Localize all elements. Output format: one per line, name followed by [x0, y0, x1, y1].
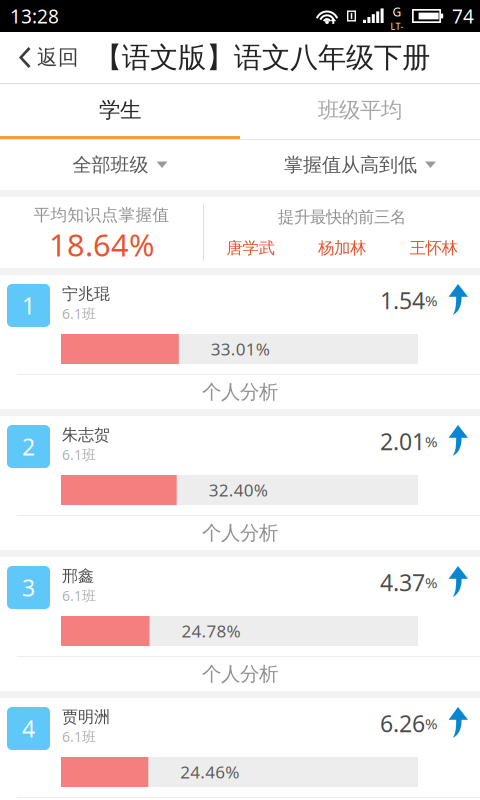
- staticText: 【语文版】语文八年级下册: [94, 40, 430, 75]
- staticText: 13:28: [10, 3, 59, 29]
- staticText: 邢鑫: [62, 566, 94, 586]
- staticText: 平均知识点掌握值: [33, 205, 169, 225]
- button[interactable]: 1: [0, 275, 480, 409]
- staticText: 74: [452, 3, 474, 29]
- staticText: 18.64%: [49, 224, 154, 265]
- staticText: 全部班级: [72, 153, 148, 177]
- staticText: %: [425, 713, 438, 733]
- staticText: 个人分析: [202, 662, 278, 686]
- staticText: LTE: [390, 20, 403, 45]
- staticText: 4G: [392, 0, 401, 20]
- staticText: 4: [22, 713, 35, 744]
- staticText: 1: [22, 290, 35, 321]
- staticText: 朱志贺: [62, 425, 110, 445]
- staticText: 6.1班: [62, 727, 96, 746]
- staticText: 个人分析: [202, 380, 278, 404]
- button[interactable]: 2: [0, 416, 480, 550]
- staticText: 32.40%: [209, 478, 268, 502]
- staticText: %: [425, 572, 438, 592]
- button[interactable]: 3: [0, 557, 480, 691]
- staticText: 贾明洲: [62, 707, 110, 727]
- button[interactable]: 班级平均: [240, 84, 480, 139]
- staticText: 33.01%: [211, 337, 270, 361]
- button[interactable]: 学生: [0, 84, 240, 139]
- staticText: 提升最快的前三名: [278, 207, 406, 227]
- staticText: 24.78%: [181, 619, 240, 643]
- staticText: 1.54: [380, 285, 425, 316]
- button[interactable]: 全部班级: [0, 140, 240, 190]
- button[interactable]: 4: [0, 698, 480, 800]
- button[interactable]: 返回: [0, 32, 91, 83]
- staticText: 个人分析: [202, 521, 278, 545]
- staticText: 2: [22, 431, 35, 462]
- staticText: 返回: [37, 45, 79, 70]
- staticText: 3: [22, 572, 35, 603]
- staticText: 6.1班: [62, 304, 96, 323]
- staticText: 4.37: [380, 567, 425, 598]
- staticText: 杨加林: [318, 238, 366, 258]
- button[interactable]: 掌握值从高到低: [240, 140, 480, 190]
- staticText: %: [425, 290, 438, 310]
- staticText: 学生: [99, 96, 141, 123]
- staticText: 2.01: [380, 426, 425, 457]
- staticText: 6.26: [380, 708, 425, 739]
- staticText: 唐学武: [226, 238, 274, 258]
- staticText: 王怀林: [409, 238, 457, 258]
- staticText: 班级平均: [318, 96, 402, 123]
- staticText: %: [425, 431, 438, 451]
- staticText: 6.1班: [62, 586, 96, 605]
- staticText: 掌握值从高到低: [284, 153, 417, 177]
- staticText: 6.1班: [62, 445, 96, 464]
- staticText: 24.46%: [180, 760, 239, 784]
- staticText: 宁兆琨: [62, 284, 110, 304]
